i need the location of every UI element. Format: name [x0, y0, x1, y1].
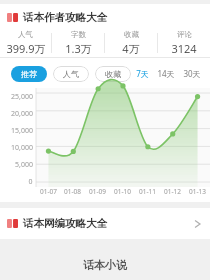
staticText: 人气: [63, 69, 79, 79]
staticText: 30天: [183, 68, 201, 79]
staticText: 01-08: [64, 187, 81, 196]
button[interactable]: 14天: [156, 65, 176, 82]
button[interactable]: 话本网编攻略大全: [0, 208, 210, 239]
staticText: 话本作者攻略大全: [23, 11, 107, 24]
staticText: 3124: [171, 41, 197, 56]
staticText: 01-11: [139, 187, 156, 196]
button[interactable]: 字数: [52, 30, 104, 56]
staticText: 字数: [71, 30, 86, 39]
staticText: 4万: [122, 41, 140, 56]
staticText: 话本网编攻略大全: [23, 217, 107, 230]
staticText: 话本小说: [83, 258, 127, 272]
staticText: 1.3万: [65, 41, 92, 56]
button[interactable]: 30天: [182, 65, 202, 82]
button[interactable]: 7天: [135, 65, 150, 82]
staticText: 人气: [18, 30, 33, 39]
button[interactable]: 评论: [158, 30, 210, 56]
staticText: 01-10: [114, 187, 131, 196]
staticText: 20,000: [11, 109, 33, 119]
staticText: 14天: [157, 68, 175, 79]
staticText: 01-13: [189, 187, 206, 196]
button[interactable]: 人气: [53, 66, 89, 82]
button[interactable]: 收藏: [95, 66, 131, 82]
staticText: 10,000: [11, 143, 33, 153]
staticText: 5,000: [15, 160, 33, 170]
button[interactable]: 人气: [0, 30, 51, 56]
staticText: 0: [28, 177, 33, 187]
button[interactable]: 推荐: [11, 66, 47, 82]
button[interactable]: 收藏: [105, 30, 157, 56]
staticText: 收藏: [124, 30, 139, 39]
other: 打开: [194, 218, 201, 230]
staticText: 7天: [136, 68, 149, 79]
staticText: 01-07: [40, 187, 57, 196]
staticText: 01-12: [164, 187, 181, 196]
staticText: 收藏: [105, 69, 121, 79]
staticText: 评论: [177, 30, 192, 39]
staticText: 399.9万: [6, 41, 46, 56]
staticText: 25,000: [11, 92, 33, 102]
button[interactable]: 话本作者攻略大全: [0, 4, 210, 29]
staticText: 15,000: [11, 126, 33, 136]
staticText: 01-09: [89, 187, 106, 196]
staticText: 推荐: [21, 69, 37, 79]
